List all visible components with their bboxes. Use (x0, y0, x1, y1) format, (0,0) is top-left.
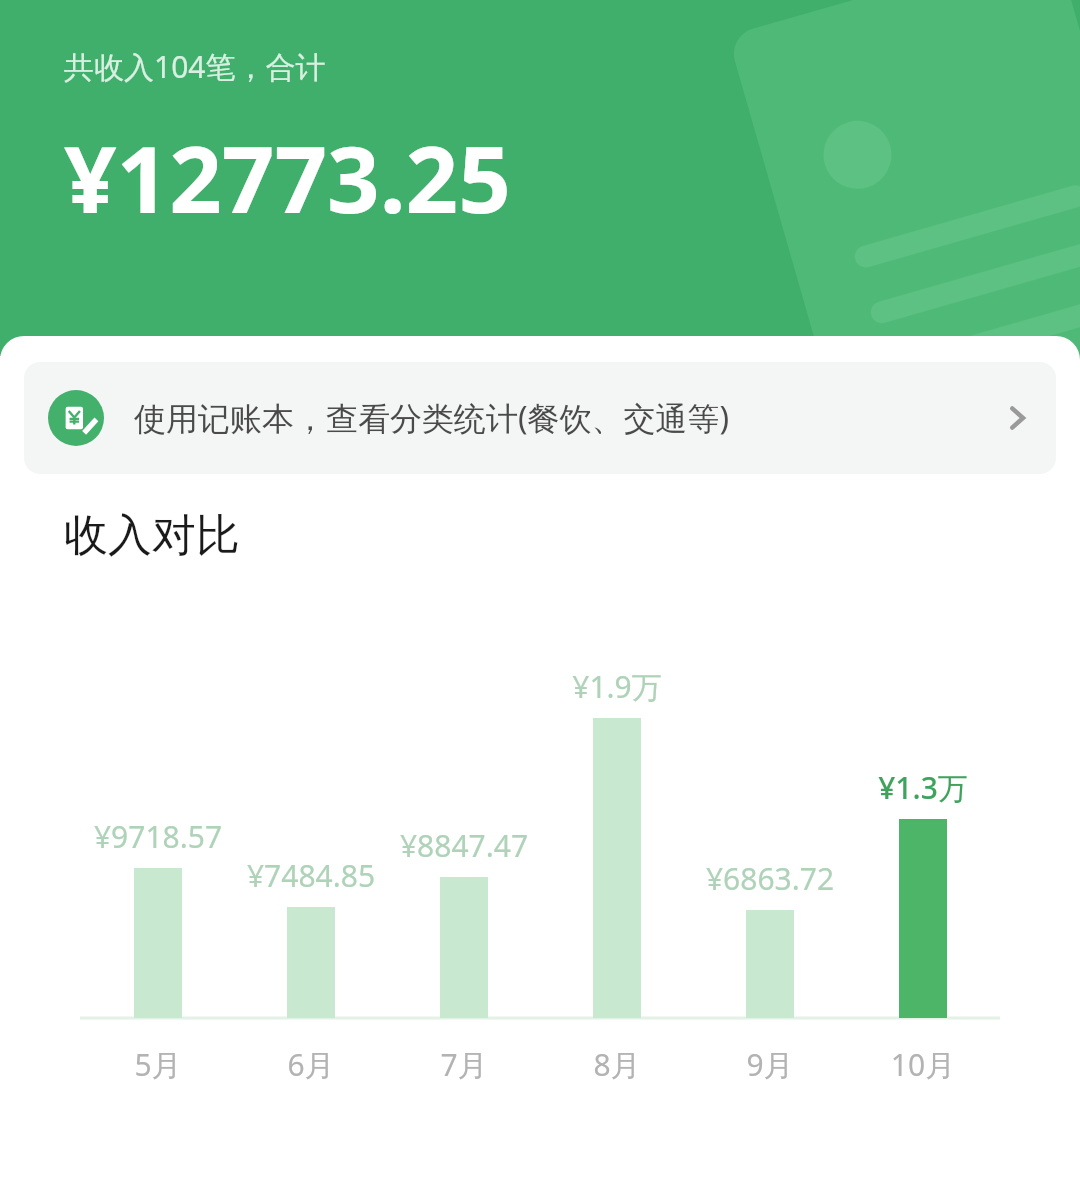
staticText: 6月 (201, 1044, 421, 1085)
staticText: ¥8847.47 (354, 825, 574, 866)
button[interactable]: 使用记账本，查看分类统计(餐饮、交通等) (24, 362, 1056, 474)
staticText: ¥9718.57 (48, 816, 268, 857)
staticText: 10月 (813, 1044, 1033, 1085)
staticText: 使用记账本，查看分类统计(餐饮、交通等) (134, 396, 1002, 440)
staticText: 7月 (354, 1044, 574, 1085)
staticText: 8月 (507, 1044, 727, 1085)
staticText: ¥1.3万 (813, 767, 1033, 808)
staticText: ¥12773.25 (64, 115, 511, 240)
staticText: ¥1.9万 (507, 666, 727, 707)
other: More (1002, 403, 1032, 433)
staticText: 9月 (660, 1044, 880, 1085)
staticText: 收入对比 (64, 508, 240, 563)
staticText: ¥7484.85 (201, 855, 421, 896)
staticText: 5月 (48, 1044, 268, 1085)
staticText: ¥6863.72 (660, 858, 880, 899)
staticText: 共收入104笔，合计 (64, 46, 326, 87)
